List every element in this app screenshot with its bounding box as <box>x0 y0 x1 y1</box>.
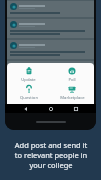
staticText: Update <box>21 77 36 83</box>
staticText: Poll <box>68 77 76 83</box>
button[interactable]: Recents <box>71 104 80 113</box>
button[interactable]: Back <box>21 104 30 113</box>
button[interactable] <box>10 3 91 15</box>
button[interactable] <box>10 21 91 36</box>
button[interactable]: Question <box>7 84 50 102</box>
staticText: Marketplace <box>60 95 85 101</box>
button[interactable] <box>10 42 91 57</box>
button[interactable]: Home <box>46 104 55 113</box>
button[interactable] <box>10 63 91 78</box>
button[interactable]: Marketplace <box>50 84 94 102</box>
staticText: Add post and send it to relevant people … <box>14 140 88 170</box>
button[interactable]: Poll <box>50 66 94 84</box>
staticText: Question <box>20 95 38 101</box>
button[interactable]: Update <box>7 66 50 84</box>
